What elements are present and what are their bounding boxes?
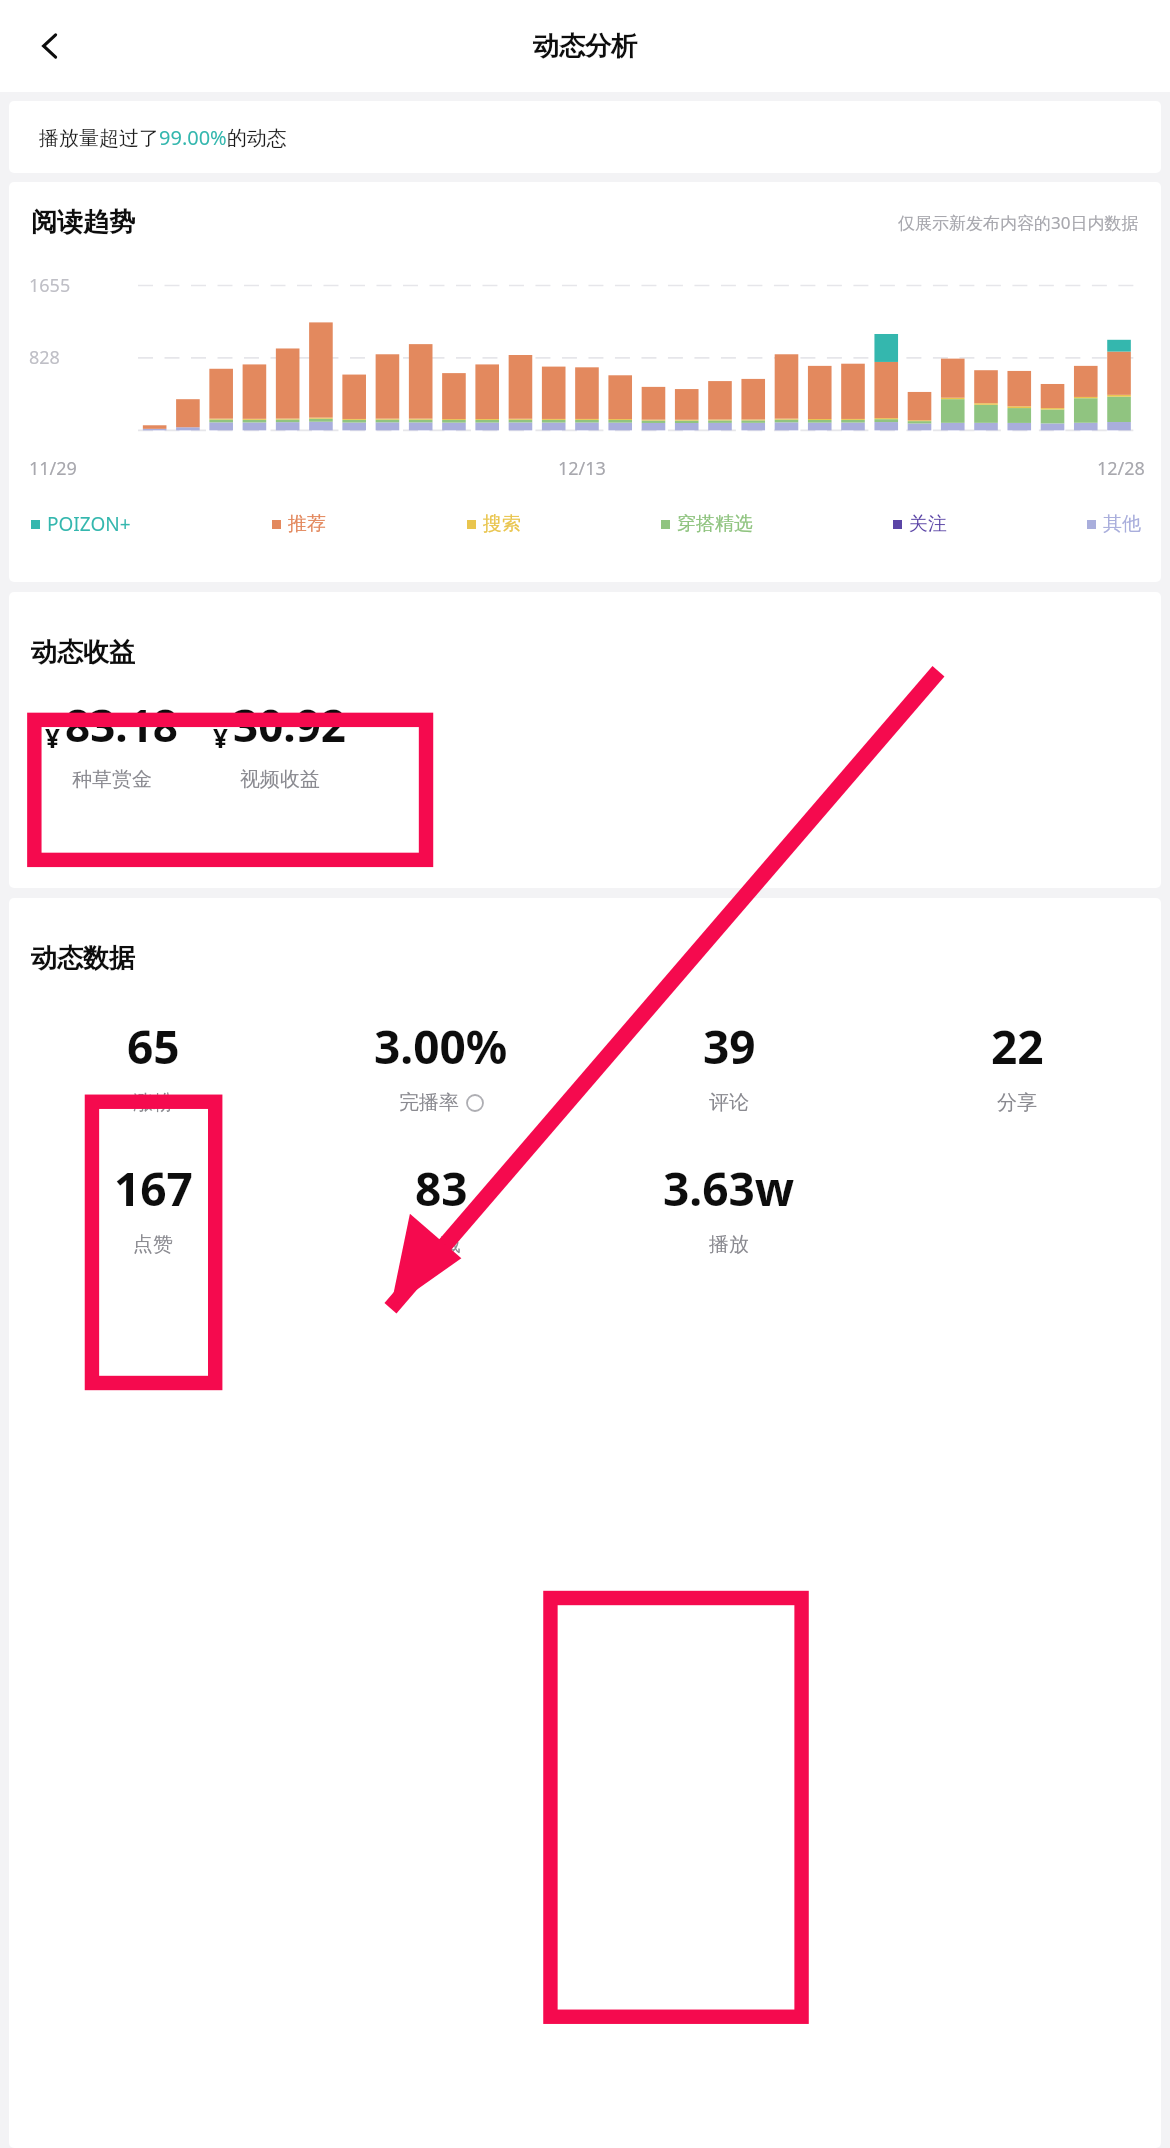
staticText: 动态收益 bbox=[31, 636, 135, 669]
staticText: 播放量超过了99.00%的动态 bbox=[39, 124, 287, 151]
staticText: ¥ bbox=[45, 720, 60, 755]
staticText: 1655 bbox=[29, 273, 71, 298]
button[interactable]: 3.63w bbox=[585, 1157, 873, 1257]
staticText: 30.92 bbox=[233, 695, 347, 755]
staticText: 39 bbox=[703, 1015, 756, 1078]
staticText: 搜索 bbox=[483, 512, 521, 536]
staticText: 点赞 bbox=[133, 1232, 173, 1257]
staticText: 3.00% bbox=[374, 1015, 508, 1078]
button[interactable]: Back bbox=[20, 16, 80, 76]
staticText: 播放 bbox=[709, 1232, 749, 1257]
button[interactable]: 播放量超过了99.00%的动态 bbox=[9, 101, 1161, 173]
staticText: 65 bbox=[127, 1015, 180, 1078]
staticText: ¥ bbox=[213, 720, 228, 755]
staticText: 动态分析 bbox=[533, 30, 637, 63]
staticText: 关注 bbox=[909, 512, 947, 536]
staticText: 828 bbox=[29, 345, 60, 370]
staticText: 穿搭精选 bbox=[677, 512, 753, 536]
staticText: 分享 bbox=[997, 1090, 1037, 1115]
staticText: 动态数据 bbox=[31, 942, 135, 975]
staticText: 12/28 bbox=[1097, 456, 1145, 481]
staticText: 3.63w bbox=[663, 1157, 795, 1220]
staticText: 12/13 bbox=[558, 456, 606, 481]
button[interactable]: 3.00% bbox=[297, 1015, 585, 1115]
staticText: 其他 bbox=[1103, 512, 1141, 536]
staticText: 阅读趋势 bbox=[31, 206, 135, 239]
staticText: 完播率 bbox=[399, 1090, 459, 1115]
staticText: 评论 bbox=[709, 1090, 749, 1115]
staticText: 推荐 bbox=[288, 512, 326, 536]
staticText: 11/29 bbox=[29, 456, 77, 481]
button[interactable]: 65 bbox=[9, 1015, 297, 1115]
staticText: 收藏 bbox=[421, 1232, 461, 1257]
staticText: 22 bbox=[991, 1015, 1044, 1078]
staticText: 种草赏金 bbox=[72, 767, 152, 792]
staticText: 涨粉 bbox=[133, 1090, 173, 1115]
staticText: 视频收益 bbox=[240, 767, 320, 792]
staticText: 83 bbox=[415, 1157, 468, 1220]
button[interactable]: 22 bbox=[873, 1015, 1161, 1115]
button[interactable]: 83 bbox=[297, 1157, 585, 1257]
button[interactable]: ¥ bbox=[201, 695, 359, 792]
button[interactable]: ¥ bbox=[33, 695, 191, 792]
button[interactable]: 39 bbox=[585, 1015, 873, 1115]
staticText: 167 bbox=[114, 1157, 193, 1220]
staticText: POIZON+ bbox=[47, 511, 131, 537]
staticText: 仅展示新发布内容的30日内数据 bbox=[898, 211, 1139, 234]
button[interactable]: 167 bbox=[9, 1157, 297, 1257]
staticText: 83.18 bbox=[65, 695, 179, 755]
